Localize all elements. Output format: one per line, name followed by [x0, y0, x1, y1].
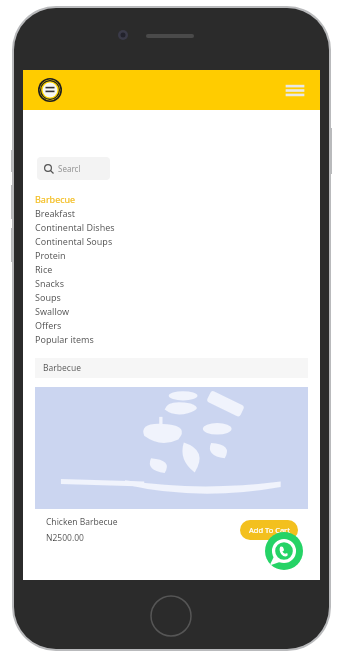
staticText: Offers — [35, 319, 62, 331]
button[interactable]: Breakfast — [35, 206, 320, 220]
staticText: Soups — [35, 291, 61, 303]
button[interactable]: Add To Cart — [240, 520, 298, 540]
staticText: Add To Cart — [249, 525, 290, 535]
button[interactable]: Popular items — [35, 332, 320, 346]
button[interactable]: Protein — [35, 248, 320, 262]
staticText: Protein — [35, 249, 66, 261]
button[interactable]: Swallow — [35, 304, 320, 318]
button[interactable]: Barbecue — [35, 192, 320, 206]
button[interactable]: Rice — [35, 262, 320, 276]
button[interactable]: Soups — [35, 290, 320, 304]
staticText: Searcl — [58, 163, 81, 174]
staticText: Breakfast — [35, 207, 76, 219]
button[interactable]: Chat on WhatsApp — [265, 532, 303, 570]
staticText: Rice — [35, 263, 53, 275]
button[interactable]: Menu — [282, 77, 308, 103]
button[interactable]: Chicken Barbecue — [35, 387, 308, 544]
staticText: Barbecue — [43, 362, 81, 374]
staticText: Popular items — [35, 333, 94, 345]
button[interactable]: Searcl — [37, 157, 110, 180]
staticText: Continental Dishes — [35, 221, 115, 233]
staticText: Snacks — [35, 277, 64, 289]
staticText: Chicken Barbecue — [46, 516, 118, 528]
button[interactable]: Continental Soups — [35, 234, 320, 248]
staticText: Continental Soups — [35, 235, 113, 247]
button[interactable]: Continental Dishes — [35, 220, 320, 234]
button[interactable]: Home logo — [38, 78, 62, 102]
staticText: Barbecue — [35, 193, 76, 205]
button[interactable]: Offers — [35, 318, 320, 332]
staticText: Swallow — [35, 305, 70, 317]
button[interactable]: Snacks — [35, 276, 320, 290]
staticText: N2500.00 — [46, 532, 84, 544]
